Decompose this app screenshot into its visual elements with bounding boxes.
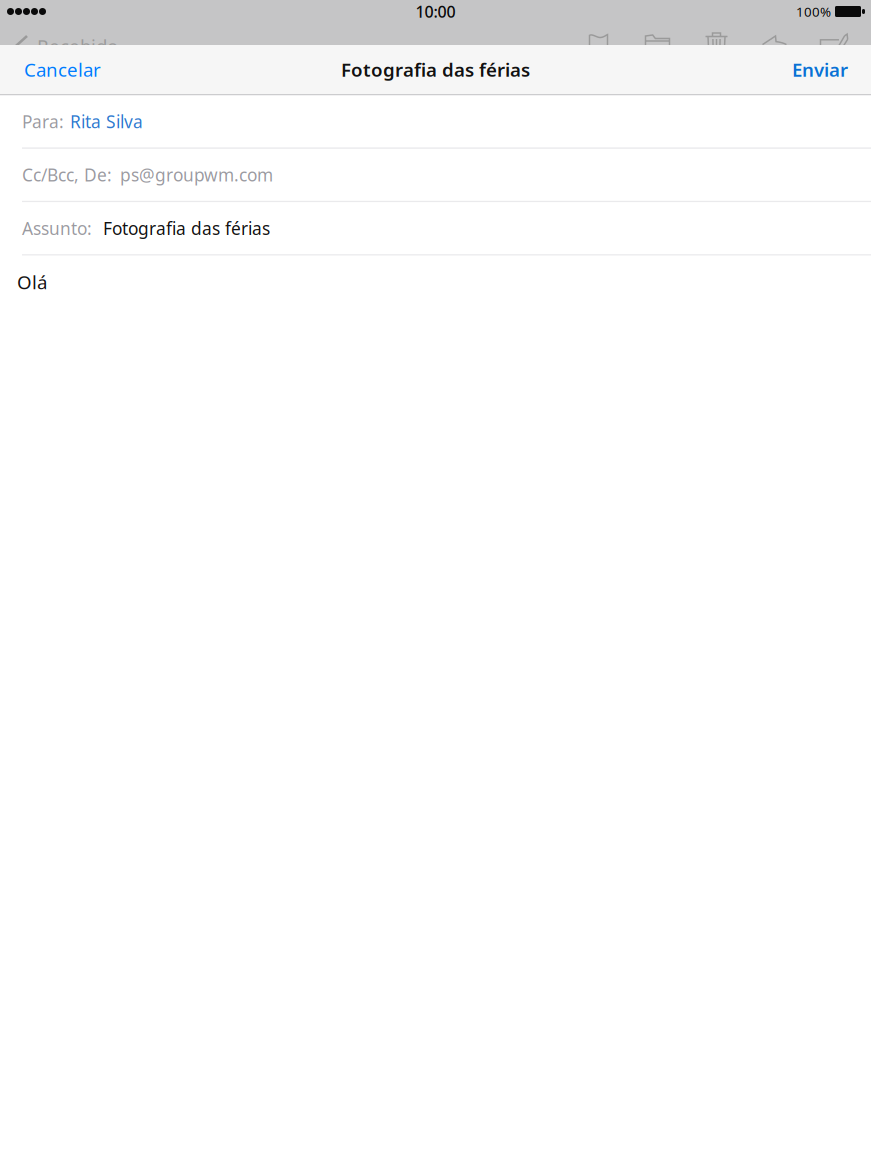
button[interactable]: Cc/Bcc, De: (0, 149, 871, 201)
staticText: Recebido (37, 34, 118, 58)
button[interactable]: Enviar (776, 45, 871, 94)
staticText: 100% (796, 3, 831, 20)
staticText: Olá (17, 270, 47, 294)
staticText: Assunto: (22, 217, 92, 240)
button[interactable]: Assunto: (0, 202, 871, 254)
staticText: Fotografia das férias (341, 57, 530, 82)
staticText: ps@groupwm.com (120, 163, 273, 186)
button[interactable]: Responder (746, 30, 805, 60)
staticText: Cancelar (24, 57, 101, 82)
button[interactable]: Para: (0, 95, 871, 147)
button[interactable]: Mover para pasta (628, 30, 687, 60)
staticText: Enviar (792, 57, 848, 82)
staticText: 10:00 (415, 1, 455, 22)
button[interactable]: Recebido (0, 30, 118, 60)
button[interactable]: Nova mensagem (805, 30, 864, 60)
staticText: Fotografia das férias (103, 217, 270, 240)
button[interactable]: Olá (0, 256, 871, 304)
button[interactable]: Sinalizar (569, 30, 628, 60)
button[interactable]: Apagar (687, 30, 746, 60)
staticText: Rita Silva (70, 110, 143, 133)
staticText: Cc/Bcc, De: (22, 163, 112, 186)
button[interactable]: Cancelar (0, 45, 117, 94)
staticText: Para: (22, 110, 64, 133)
